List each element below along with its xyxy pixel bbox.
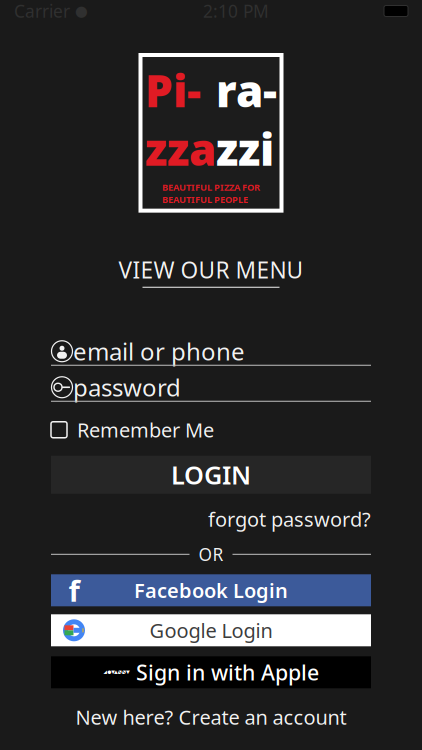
- staticText: Facebook Login: [134, 577, 288, 604]
- button[interactable]: forgot password?: [208, 506, 371, 532]
- staticText: BEAUTIFUL PIZZA FOR BEAUTIFUL PEOPLE: [162, 181, 260, 206]
- button[interactable]: Remember Me: [51, 415, 371, 445]
- button[interactable]: : [51, 656, 371, 688]
- staticText: VIEW OUR MENU: [118, 255, 303, 285]
- staticText: 2:10 PM: [203, 0, 269, 22]
- staticText: OR: [198, 543, 223, 566]
- staticText: LOGIN: [171, 458, 251, 491]
- staticText: ●: [75, 3, 88, 19]
- staticText: New here? Create an account: [75, 704, 346, 730]
- staticText: Pizza: [145, 61, 216, 178]
- staticText: Google Login: [149, 617, 272, 644]
- staticText: email or phone: [73, 335, 245, 367]
- button[interactable]: New here? Create an account: [0, 700, 422, 734]
- button[interactable]: f: [51, 574, 371, 606]
- staticText: forgot password?: [208, 506, 371, 532]
- staticText: Carrier: [14, 0, 70, 22]
- staticText: f: [68, 571, 79, 610]
- button[interactable]: VIEW OUR MENU: [118, 255, 303, 288]
- staticText: : [103, 659, 130, 685]
- staticText: razzi: [216, 61, 277, 178]
- button[interactable]: Google Login: [51, 614, 371, 646]
- staticText: Remember Me: [77, 416, 214, 443]
- staticText: password: [73, 371, 181, 403]
- button[interactable]: LOGIN: [51, 456, 371, 494]
- staticText: Sign in with Apple: [136, 658, 319, 686]
